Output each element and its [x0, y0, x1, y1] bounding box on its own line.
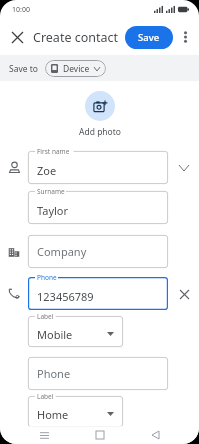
button[interactable]: Save — [125, 26, 173, 49]
button[interactable]: Clear phone — [175, 285, 193, 303]
staticText: Phone — [37, 366, 71, 381]
button[interactable]: Device — [45, 60, 106, 77]
staticText: Save — [138, 31, 160, 44]
button[interactable]: First name — [28, 151, 168, 184]
button[interactable]: Home — [89, 426, 111, 444]
button[interactable]: Label — [28, 396, 123, 427]
staticText: Create contact — [33, 29, 119, 46]
button[interactable]: Phone — [28, 357, 168, 390]
staticText: Device — [63, 63, 90, 75]
button[interactable]: Add photo — [85, 91, 115, 121]
button[interactable]: Recent apps — [33, 426, 55, 444]
staticText: Surname — [37, 187, 65, 196]
button[interactable]: Label — [28, 316, 123, 347]
staticText: Label — [37, 312, 54, 321]
button[interactable]: Surname — [28, 191, 168, 224]
button[interactable]: Close — [6, 26, 28, 48]
staticText: Phone — [37, 273, 57, 282]
staticText: Save to — [9, 63, 38, 75]
staticText: Zoe — [37, 163, 57, 178]
button[interactable]: Expand name fields — [175, 159, 193, 177]
staticText: Mobile — [37, 327, 73, 342]
button[interactable]: Company — [28, 235, 168, 268]
staticText: 123456789 — [37, 289, 94, 304]
staticText: Home — [37, 407, 69, 422]
staticText: Label — [37, 392, 54, 401]
staticText: 10:00 — [12, 5, 30, 15]
button[interactable]: Back — [144, 426, 166, 444]
staticText: Add photo — [79, 126, 121, 138]
staticText: Company — [37, 244, 87, 259]
button[interactable]: Phone — [28, 277, 168, 310]
staticText: Taylor — [37, 203, 69, 218]
staticText: First name — [37, 147, 70, 156]
button[interactable]: More options — [175, 27, 195, 47]
